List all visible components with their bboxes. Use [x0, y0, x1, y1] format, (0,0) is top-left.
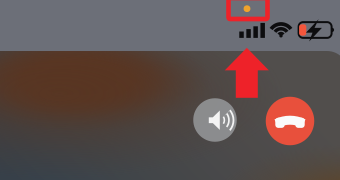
button[interactable]: Speaker [193, 98, 237, 142]
button[interactable]: End call [266, 97, 314, 145]
